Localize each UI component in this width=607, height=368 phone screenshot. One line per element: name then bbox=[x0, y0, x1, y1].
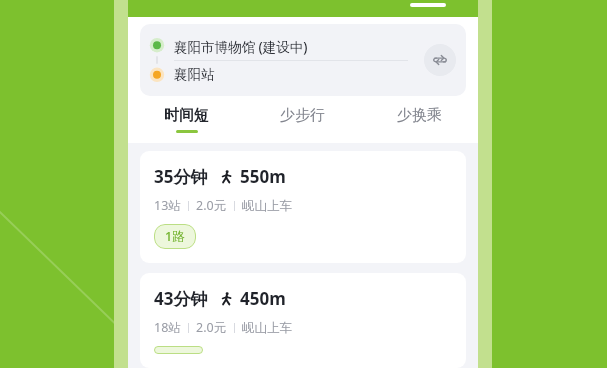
button[interactable]: 43分钟 bbox=[140, 273, 466, 368]
button[interactable]: 少步行 bbox=[244, 96, 361, 143]
staticText: 13站 bbox=[154, 197, 181, 214]
staticText: 少步行 bbox=[280, 106, 325, 125]
staticText: 2.0元 bbox=[196, 197, 227, 214]
staticText: 岘山上车 bbox=[242, 320, 292, 336]
staticText: 35分钟 bbox=[154, 165, 208, 188]
staticText: 550m bbox=[240, 165, 286, 188]
button[interactable]: 35分钟 bbox=[140, 151, 466, 263]
button[interactable]: 1路 bbox=[154, 224, 196, 249]
staticText: 襄阳市博物馆 (建设中) bbox=[174, 38, 308, 56]
button[interactable]: Swap origin and destination bbox=[424, 44, 456, 76]
button[interactable]: 时间短 bbox=[128, 96, 244, 143]
staticText: 2.0元 bbox=[196, 319, 227, 336]
staticText: 1路 bbox=[165, 228, 185, 245]
staticText: 43分钟 bbox=[154, 287, 208, 310]
staticText: 时间短 bbox=[164, 106, 209, 125]
button[interactable]: 少换乘 bbox=[361, 96, 478, 143]
staticText: 岘山上车 bbox=[242, 198, 292, 214]
staticText: 襄阳站 bbox=[174, 66, 215, 83]
staticText: 18站 bbox=[154, 319, 181, 336]
button[interactable]: 13路 bbox=[154, 346, 203, 354]
button[interactable]: 襄阳市博物馆 (建设中) bbox=[174, 34, 418, 60]
button[interactable]: 襄阳站 bbox=[174, 61, 418, 87]
staticText: 450m bbox=[240, 287, 286, 310]
staticText: 少换乘 bbox=[397, 106, 442, 125]
